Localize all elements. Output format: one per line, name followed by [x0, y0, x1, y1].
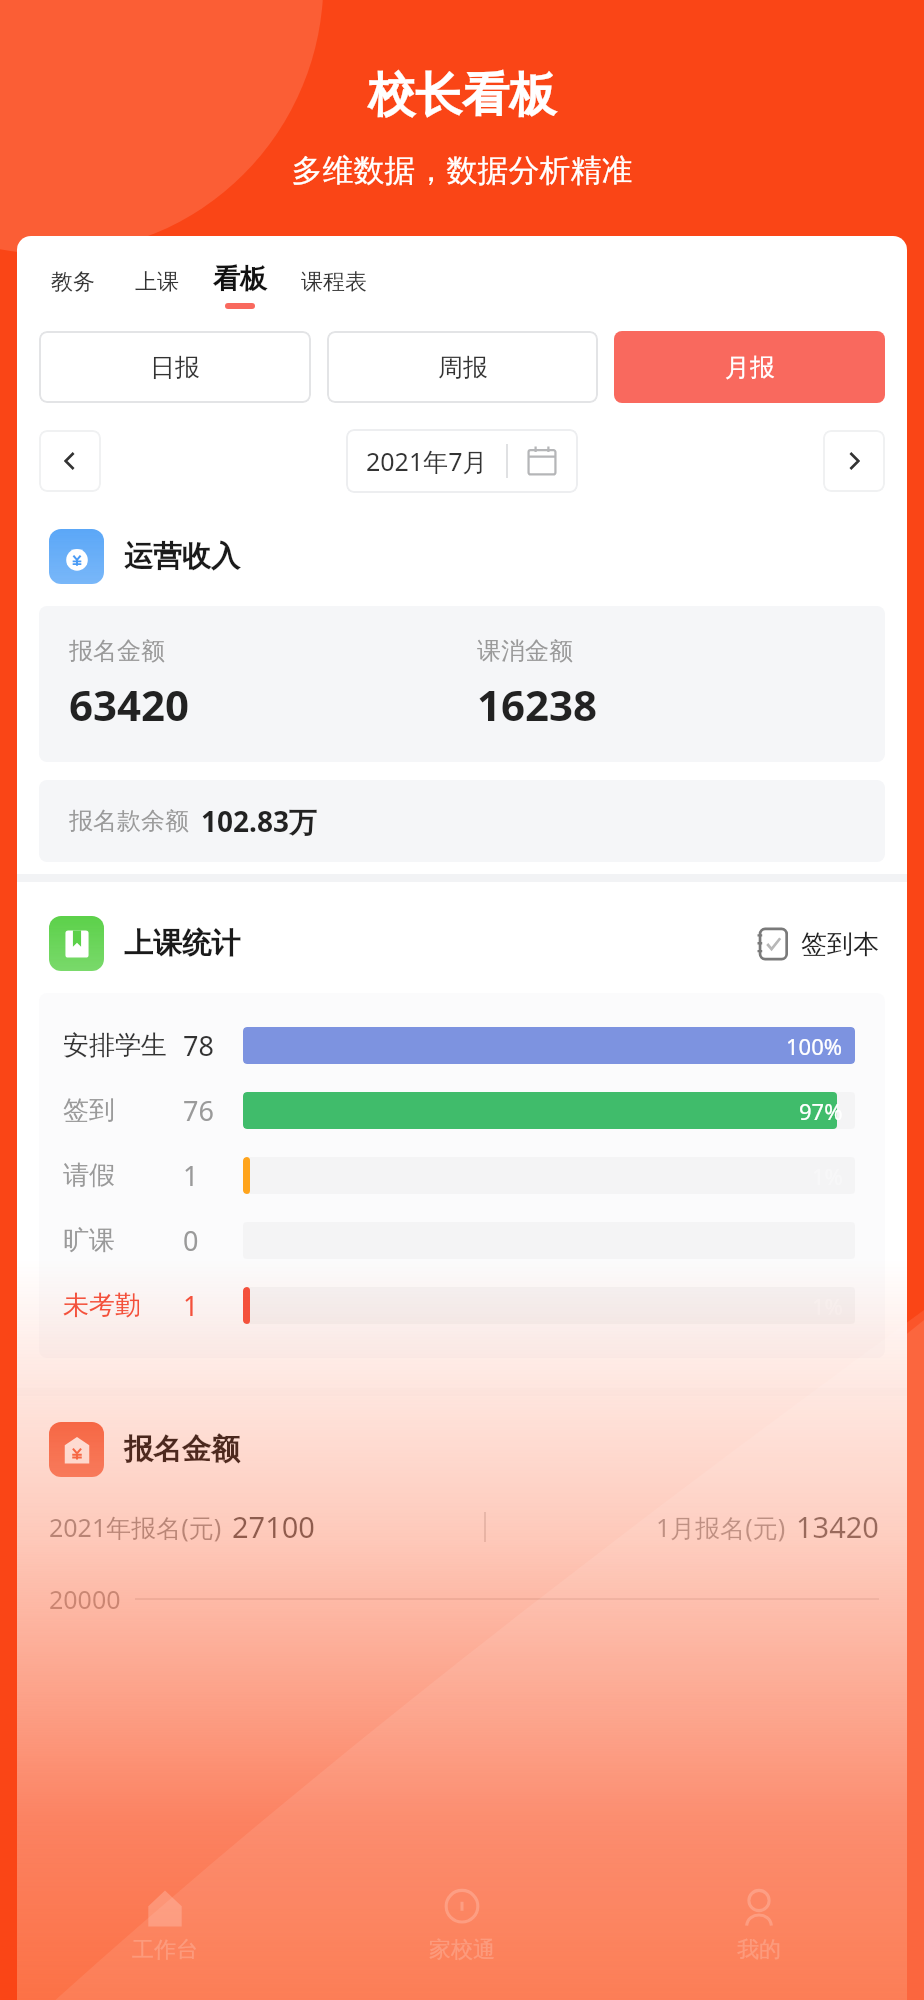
staticText: 月报 [725, 352, 775, 383]
staticText: 家校通 [429, 1936, 495, 1964]
button[interactable]: Previous month [39, 430, 101, 492]
button[interactable]: 我的 [610, 1878, 907, 1972]
staticText: 13420 [796, 1507, 879, 1546]
staticText: 未考勤 [63, 1289, 141, 1322]
button[interactable]: 家校通 [313, 1878, 610, 1972]
button[interactable]: 2021年7月 [346, 429, 578, 493]
button[interactable]: 上课 [133, 268, 181, 309]
button[interactable]: 工作台 [17, 1878, 313, 1972]
staticText: 102.83万 [201, 802, 317, 840]
button[interactable]: 月报 [614, 331, 885, 403]
staticText: 97% [799, 1096, 843, 1126]
staticText: 27100 [232, 1507, 315, 1546]
staticText: 旷课 [63, 1224, 115, 1257]
staticText: 76 [183, 1092, 214, 1129]
staticText: 周报 [438, 352, 488, 383]
staticText: 100% [786, 1031, 843, 1061]
staticText: 签到 [63, 1094, 115, 1127]
staticText: 63420 [69, 676, 190, 733]
staticText: 2021年报名(元) [49, 1510, 222, 1544]
staticText: 校长看板 [0, 66, 924, 125]
staticText: 工作台 [132, 1936, 198, 1964]
button[interactable]: 看板 [211, 262, 269, 309]
staticText: 课消金额 [477, 636, 573, 666]
staticText: 课程表 [301, 268, 367, 296]
staticText: 多维数据，数据分析精准 [0, 151, 924, 190]
button[interactable]: 教务 [49, 268, 97, 309]
staticText: 1 [183, 1157, 199, 1194]
staticText: 16238 [477, 676, 598, 733]
staticText: 0 [183, 1222, 199, 1259]
staticText: 请假 [63, 1159, 115, 1192]
staticText: 报名款余额 [69, 806, 189, 836]
button[interactable]: 签到本 [755, 926, 879, 962]
staticText: 报名金额 [124, 1431, 240, 1468]
staticText: 20000 [49, 1582, 121, 1616]
button[interactable]: 日报 [39, 331, 311, 403]
staticText: 78 [183, 1027, 214, 1064]
staticText: 1月报名(元) [656, 1510, 786, 1544]
staticText: 日报 [150, 352, 200, 383]
button[interactable]: 周报 [327, 331, 598, 403]
staticText: 上课统计 [124, 925, 240, 962]
staticText: 看板 [213, 262, 267, 296]
button[interactable]: Next month [823, 430, 885, 492]
staticText: 教务 [51, 268, 95, 296]
staticText: 安排学生 [63, 1029, 167, 1062]
staticText: 上课 [135, 268, 179, 296]
staticText: 我的 [737, 1936, 781, 1964]
staticText: 2021年7月 [366, 444, 488, 478]
staticText: 签到本 [801, 928, 879, 961]
staticText: 报名金额 [69, 636, 165, 666]
staticText: 运营收入 [124, 538, 240, 575]
staticText: 1 [183, 1287, 199, 1324]
button[interactable]: 课程表 [299, 268, 369, 309]
